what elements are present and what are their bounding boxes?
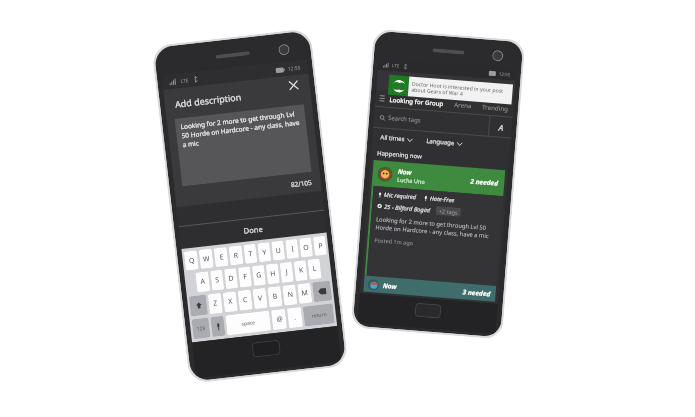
button[interactable]: . [287, 307, 303, 328]
button[interactable]: R [228, 245, 244, 265]
staticText: Language [426, 137, 455, 147]
staticText: T [248, 249, 253, 259]
staticText: +2 tags [439, 207, 458, 216]
staticText: 12:55 [499, 70, 511, 77]
button[interactable]: Close [285, 76, 302, 94]
staticText: X [227, 297, 233, 307]
button[interactable]: Search tags [373, 107, 489, 136]
button[interactable]: Mic required [378, 190, 417, 201]
staticText: O [303, 243, 310, 253]
button[interactable]: All times [378, 131, 415, 146]
staticText: J [285, 267, 288, 277]
staticText: Search tags [388, 114, 421, 124]
button[interactable]: Looking for 2 more to get through Lvl 50… [175, 104, 312, 187]
button[interactable]: O [299, 237, 313, 257]
staticText: Mic required [384, 191, 417, 201]
staticText: 123 [196, 325, 206, 333]
button[interactable]: space [225, 310, 271, 335]
staticText: space [241, 319, 256, 328]
button[interactable]: Arena [452, 100, 475, 110]
staticText: B [272, 291, 278, 302]
staticText: 2 needed [470, 176, 499, 188]
staticText: A [200, 277, 206, 287]
button[interactable]: Z [208, 293, 223, 314]
button[interactable]: V [252, 288, 268, 309]
button[interactable]: Home [251, 339, 281, 358]
staticText: Lucha Uno [397, 176, 425, 185]
staticText: P [317, 241, 324, 251]
button[interactable]: F [238, 266, 252, 288]
staticText: L [312, 264, 317, 274]
button[interactable]: Doctor Hoot is interested in your post a… [388, 75, 513, 105]
staticText: LTE [392, 62, 400, 69]
button[interactable]: Trending [480, 102, 510, 112]
button[interactable]: Now [372, 160, 505, 196]
staticText: H [269, 268, 276, 279]
button[interactable]: @ [271, 309, 287, 330]
staticText: Done [243, 224, 263, 236]
button[interactable]: U [271, 240, 285, 261]
staticText: Y [262, 247, 267, 258]
button[interactable]: Shift [189, 295, 208, 316]
staticText: Add description [174, 90, 242, 110]
button[interactable]: X [223, 291, 238, 312]
staticText: Looking for 2 more to get through Lvl 50… [180, 109, 302, 149]
staticText: F [242, 272, 248, 282]
staticText: V [257, 293, 263, 304]
button[interactable]: G [252, 265, 266, 286]
staticText: Happening now [377, 149, 422, 161]
staticText: 25 - Bilford Bogin! [384, 203, 431, 214]
button[interactable]: W [199, 249, 214, 269]
button[interactable]: I [285, 239, 299, 259]
button[interactable]: Looking for Group [387, 95, 447, 107]
staticText: Now [397, 167, 412, 177]
button[interactable]: M [297, 283, 312, 304]
staticText: LTE [180, 77, 190, 85]
staticText: Now [382, 281, 397, 291]
staticText: C [242, 295, 248, 305]
button[interactable]: H [266, 263, 280, 284]
staticText: S [215, 275, 220, 285]
button[interactable]: P [313, 236, 327, 256]
button[interactable]: T [243, 244, 257, 264]
button[interactable]: Now [363, 275, 496, 302]
button[interactable]: Backspace [312, 280, 332, 302]
staticText: A [498, 122, 504, 133]
staticText: N [287, 290, 294, 300]
button[interactable]: B [267, 286, 282, 307]
staticText: D [228, 273, 235, 284]
button[interactable]: 123 [191, 317, 211, 339]
button[interactable]: C [237, 289, 253, 311]
button[interactable]: Language [424, 135, 465, 150]
staticText: Z [212, 298, 218, 309]
staticText: E [219, 252, 224, 263]
staticText: I [291, 244, 295, 255]
staticText: G [255, 270, 262, 281]
staticText: @ [275, 314, 284, 325]
staticText: Arena [454, 100, 473, 109]
button[interactable]: S [210, 270, 224, 291]
button[interactable]: J [280, 262, 294, 283]
button[interactable]: Voice input [210, 316, 225, 337]
button[interactable]: D [224, 268, 238, 289]
button[interactable]: Hate-Free [423, 194, 455, 204]
button[interactable]: Filter [489, 116, 512, 138]
staticText: U [275, 246, 282, 256]
button[interactable]: Y [257, 242, 271, 262]
staticText: All times [380, 133, 406, 143]
staticText: return [311, 311, 327, 320]
button[interactable]: return [303, 303, 335, 327]
staticText: Hate-Free [429, 194, 455, 204]
button[interactable]: Done [179, 211, 326, 249]
button[interactable]: N [282, 284, 297, 306]
button[interactable]: K [294, 260, 308, 281]
button[interactable]: +2 tags [436, 206, 461, 217]
button[interactable]: L [307, 258, 322, 280]
staticText: Gears of War 4 [422, 79, 469, 92]
staticText: Posted 1m ago [374, 236, 414, 246]
button[interactable]: Q [184, 250, 199, 271]
button[interactable]: A [195, 271, 210, 292]
button[interactable]: E [214, 247, 229, 267]
button[interactable]: Home [414, 303, 441, 319]
staticText: R [233, 251, 239, 261]
